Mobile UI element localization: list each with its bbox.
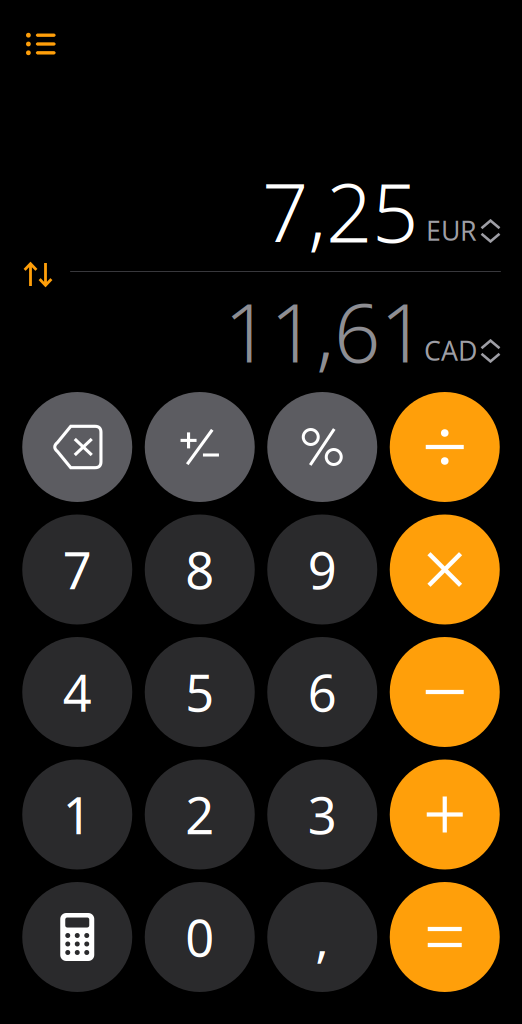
button[interactable]: Delete (22, 392, 132, 502)
button[interactable]: 7 (22, 514, 132, 624)
button[interactable]: Minus (390, 637, 500, 747)
staticText: 1 (63, 781, 92, 848)
staticText: 5 (185, 658, 214, 726)
staticText: 7 (63, 536, 92, 603)
button[interactable]: Multiply (390, 514, 500, 624)
button[interactable]: 8 (145, 514, 255, 624)
staticText: 6 (308, 658, 337, 726)
button[interactable]: Currency list (0, 0, 74, 70)
staticText: 7,25 (262, 157, 418, 265)
staticText: 3 (308, 781, 337, 848)
staticText: 4 (63, 658, 92, 726)
button[interactable]: 2 (145, 759, 255, 869)
button[interactable]: 3 (267, 759, 377, 869)
button[interactable]: Plus minus (145, 392, 255, 502)
button[interactable]: 0 (145, 882, 255, 992)
button[interactable]: Plus (390, 759, 500, 869)
button[interactable]: 4 (22, 637, 132, 747)
staticText: 9 (308, 536, 337, 603)
staticText: 8 (185, 536, 214, 603)
staticText: 0 (185, 903, 214, 971)
staticText: CAD (424, 333, 477, 368)
button[interactable]: 6 (267, 637, 377, 747)
button[interactable]: Percent (267, 392, 377, 502)
button[interactable]: 9 (267, 514, 377, 624)
button[interactable]: Calculator (22, 882, 132, 992)
button[interactable]: , (267, 882, 377, 992)
button[interactable]: 5 (145, 637, 255, 747)
staticText: , (315, 903, 329, 971)
button[interactable]: 1 (22, 759, 132, 869)
button[interactable]: Divide (390, 392, 500, 502)
button[interactable]: Equals (390, 882, 500, 992)
staticText: 2 (185, 781, 214, 848)
staticText: 11,61 (224, 277, 426, 385)
staticText: EUR (426, 213, 477, 248)
